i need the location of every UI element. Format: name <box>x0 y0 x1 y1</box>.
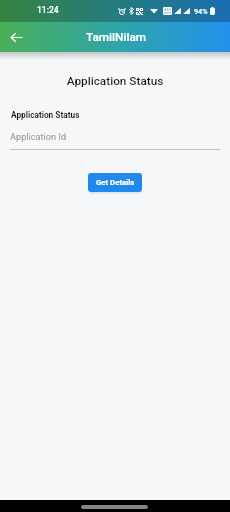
staticText: Application Id <box>10 131 67 142</box>
staticText: TamilNilam <box>1 30 230 44</box>
staticText: 94% <box>194 7 208 15</box>
button[interactable]: Get Details <box>88 173 142 192</box>
button[interactable]: Back <box>6 27 26 47</box>
staticText: 11:24 <box>37 5 59 15</box>
staticText: Application Status <box>0 74 230 88</box>
staticText: Application Status <box>11 110 80 120</box>
staticText: Get Details <box>96 178 135 187</box>
